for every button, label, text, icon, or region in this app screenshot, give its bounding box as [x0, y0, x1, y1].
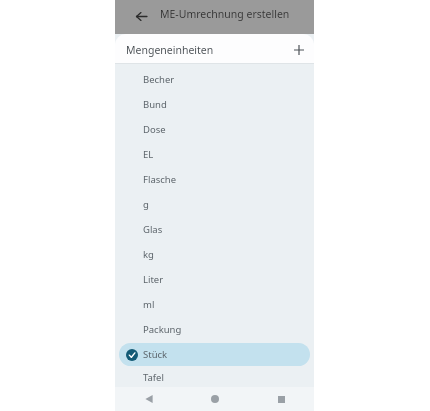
staticText: kg [143, 248, 154, 261]
staticText: Mengeneinheiten [126, 43, 214, 57]
staticText: EL [143, 148, 154, 161]
staticText: ME-Umrechnung erstellen [160, 7, 305, 21]
button[interactable]: Zurück [115, 387, 182, 411]
staticText: Flasche [143, 173, 177, 186]
button[interactable]: ml [119, 293, 310, 316]
button[interactable]: EL [119, 143, 310, 166]
button[interactable]: Packung [119, 318, 310, 341]
button[interactable]: Mengeneinheiten [115, 34, 314, 63]
staticText: Packung [143, 323, 182, 336]
button[interactable]: Startseite [182, 387, 248, 411]
staticText: Liter [143, 273, 164, 286]
staticText: ml [143, 298, 155, 311]
staticText: Dose [143, 123, 166, 136]
staticText: Becher [143, 73, 175, 86]
staticText: Glas [143, 223, 163, 236]
button[interactable]: Übersicht [248, 387, 314, 411]
button[interactable]: Bund [119, 93, 310, 116]
staticText: Stück [143, 348, 168, 361]
button[interactable]: g [119, 193, 310, 216]
button[interactable]: Flasche [119, 168, 310, 191]
button[interactable]: kg [119, 243, 310, 266]
button[interactable]: Dose [119, 118, 310, 141]
staticText: Bund [143, 98, 167, 111]
button[interactable]: Glas [119, 218, 310, 241]
staticText: Tafel [143, 371, 164, 384]
staticText: g [143, 198, 149, 211]
button[interactable]: Becher [119, 68, 310, 91]
button[interactable]: Zurück [128, 3, 154, 29]
button[interactable]: Stück [119, 343, 310, 366]
button[interactable]: Hinzufügen [288, 39, 310, 61]
button[interactable]: Liter [119, 268, 310, 291]
button[interactable]: Tafel [119, 368, 310, 386]
